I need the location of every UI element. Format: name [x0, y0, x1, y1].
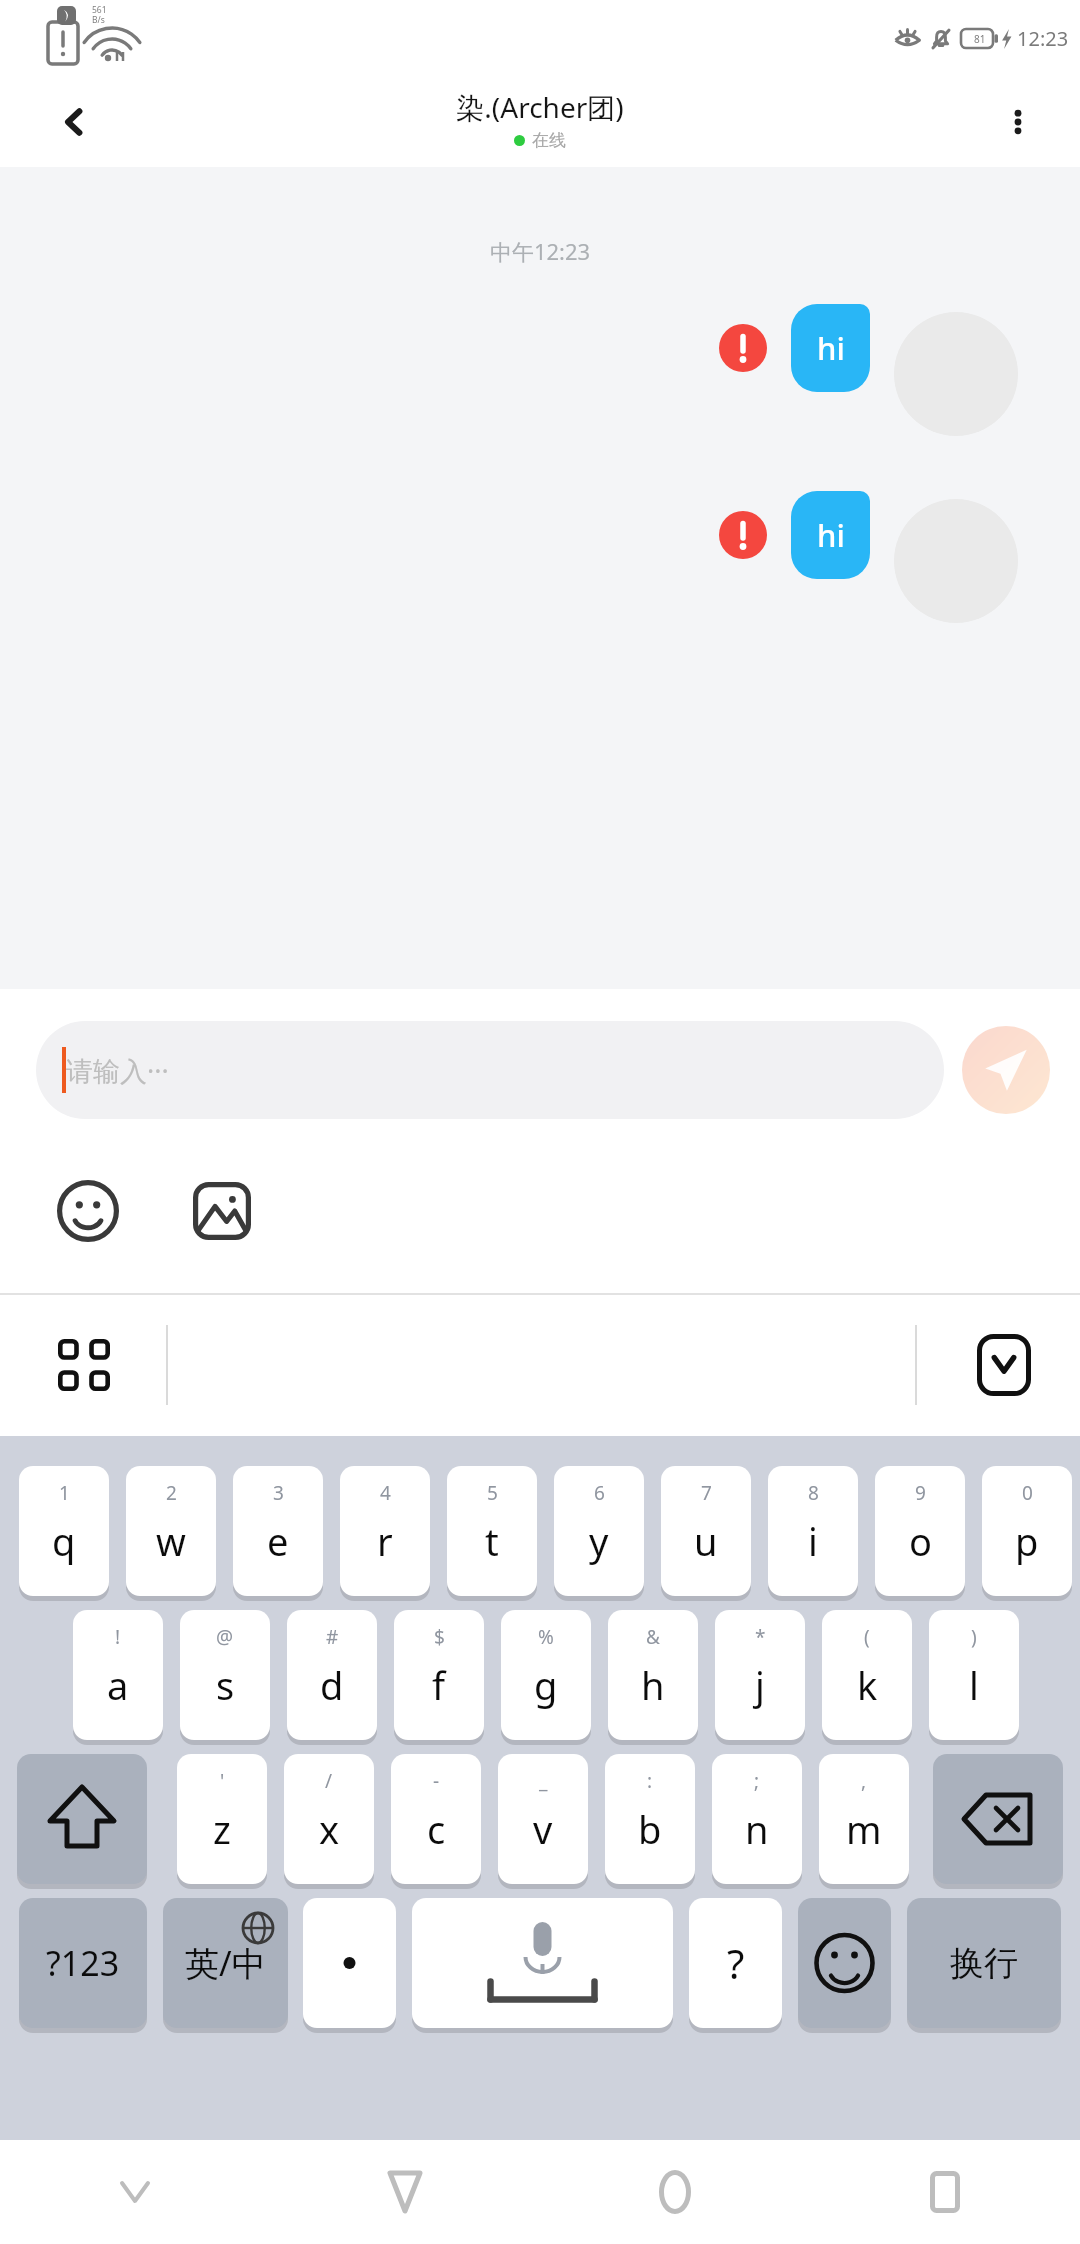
button[interactable]: n — [712, 1754, 802, 1884]
staticText: 8 — [808, 1480, 819, 1506]
button[interactable]: b — [605, 1754, 695, 1884]
button[interactable]: Recents — [810, 2140, 1080, 2244]
staticText: f — [432, 1659, 446, 1711]
button[interactable]: ? — [689, 1898, 782, 2028]
staticText: o — [909, 1515, 932, 1567]
button[interactable]: s — [180, 1610, 270, 1740]
button[interactable]: t — [447, 1466, 537, 1596]
button[interactable]: Avatar — [894, 312, 1018, 436]
staticText: # — [326, 1624, 339, 1650]
button[interactable]: Back — [48, 96, 100, 148]
button[interactable]: 请输入··· — [36, 1021, 944, 1119]
button[interactable]: j — [715, 1610, 805, 1740]
button[interactable]: u — [661, 1466, 751, 1596]
staticText: / — [325, 1768, 333, 1794]
button[interactable]: Pick image — [186, 1175, 258, 1247]
button[interactable]: Resend failed message — [719, 511, 767, 559]
button[interactable]: m — [819, 1754, 909, 1884]
button[interactable]: More options — [992, 96, 1044, 148]
staticText: @ — [216, 1624, 234, 1650]
button[interactable]: Hide keyboard — [0, 2140, 270, 2244]
staticText: a — [107, 1659, 129, 1711]
staticText: 561 B/s — [92, 4, 107, 25]
staticText: % — [538, 1624, 554, 1650]
button[interactable]: q — [19, 1466, 109, 1596]
staticText: m — [846, 1803, 882, 1855]
button[interactable]: x — [284, 1754, 374, 1884]
staticText: ? — [727, 1936, 745, 1990]
button[interactable]: v — [498, 1754, 588, 1884]
staticText: 12:23 — [1017, 25, 1069, 52]
staticText: q — [52, 1515, 76, 1567]
staticText: t — [485, 1515, 499, 1567]
button[interactable]: c — [391, 1754, 481, 1884]
button[interactable]: Keyboard panels — [46, 1327, 122, 1403]
button[interactable]: k — [822, 1610, 912, 1740]
button[interactable]: g — [501, 1610, 591, 1740]
staticText: : — [647, 1768, 653, 1794]
staticText: - — [433, 1768, 440, 1794]
staticText: 3 — [273, 1480, 284, 1506]
staticText: 5 — [487, 1480, 498, 1506]
staticText: hi — [817, 327, 845, 369]
staticText: j — [755, 1659, 765, 1711]
staticText: v — [533, 1803, 553, 1855]
button[interactable]: Avatar — [894, 499, 1018, 623]
staticText: 英/中 — [185, 1940, 266, 1986]
button[interactable]: bksp — [933, 1754, 1063, 1884]
button[interactable]: l — [929, 1610, 1019, 1740]
button[interactable]: e — [233, 1466, 323, 1596]
button[interactable]: o — [875, 1466, 965, 1596]
staticText: $ — [434, 1624, 445, 1650]
button[interactable]: p — [982, 1466, 1072, 1596]
staticText: n — [745, 1803, 769, 1855]
staticText: y — [589, 1515, 609, 1567]
button[interactable]: h — [608, 1610, 698, 1740]
button[interactable]: 换行 — [907, 1898, 1061, 2028]
staticText: 0 — [1022, 1480, 1033, 1506]
button[interactable]: w — [126, 1466, 216, 1596]
staticText: b — [638, 1803, 662, 1855]
button[interactable]: Emoji — [52, 1175, 124, 1247]
button[interactable]: smile — [798, 1898, 891, 2028]
button[interactable]: Back — [270, 2140, 540, 2244]
staticText: c — [427, 1803, 446, 1855]
staticText: hi — [817, 514, 845, 556]
staticText: z — [213, 1803, 231, 1855]
staticText: w — [156, 1515, 186, 1567]
button[interactable]: i — [768, 1466, 858, 1596]
button[interactable]: shift — [17, 1754, 147, 1884]
staticText: 9 — [915, 1480, 926, 1506]
staticText: * — [755, 1624, 766, 1650]
button[interactable]: 英/中 — [163, 1898, 288, 2028]
staticText: 2 — [166, 1480, 177, 1506]
button[interactable]: Hide keyboard — [966, 1327, 1042, 1403]
button[interactable]: r — [340, 1466, 430, 1596]
staticText: 7 — [701, 1480, 712, 1506]
button[interactable]: Send — [962, 1026, 1050, 1114]
staticText: ! — [115, 1624, 121, 1650]
staticText: 1 — [59, 1480, 70, 1506]
staticText: r — [377, 1515, 393, 1567]
button[interactable]: d — [287, 1610, 377, 1740]
button[interactable]: hi — [791, 304, 870, 392]
button[interactable]: y — [554, 1466, 644, 1596]
staticText: _ — [539, 1768, 548, 1794]
staticText: i — [808, 1515, 818, 1567]
button[interactable]: ?123 — [19, 1898, 147, 2028]
staticText: ?123 — [46, 1940, 120, 1986]
staticText: ' — [220, 1768, 225, 1794]
button[interactable]: Home — [540, 2140, 810, 2244]
button[interactable]: hi — [791, 491, 870, 579]
staticText: 中午12:23 — [0, 236, 1080, 266]
staticText: ( — [864, 1624, 870, 1650]
button[interactable]: a — [73, 1610, 163, 1740]
button[interactable]: Resend failed message — [719, 324, 767, 372]
button[interactable]: z — [177, 1754, 267, 1884]
staticText: 6 — [594, 1480, 605, 1506]
button[interactable]: space — [412, 1898, 673, 2028]
button[interactable]: f — [394, 1610, 484, 1740]
button[interactable]: dot — [303, 1898, 396, 2028]
staticText: p — [1015, 1515, 1039, 1567]
staticText: g — [534, 1659, 558, 1711]
